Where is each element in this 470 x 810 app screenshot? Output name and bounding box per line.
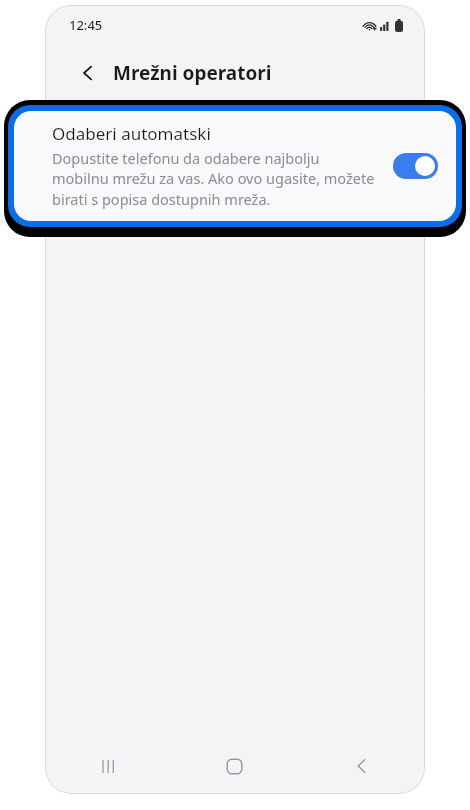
button[interactable]: Home	[171, 738, 298, 794]
button[interactable]: Recents	[45, 738, 171, 794]
button[interactable]: Back	[298, 738, 425, 794]
button[interactable]: Odaberi automatski	[14, 111, 456, 221]
staticText: Odaberi automatski	[52, 122, 211, 145]
staticText: 12:45	[69, 16, 103, 34]
staticText: Mrežni operatori	[113, 60, 272, 86]
button[interactable]: Odaberi automatski toggle, on	[393, 153, 438, 179]
staticText: Dopustite telefonu da odabere najbolju m…	[52, 148, 379, 210]
button[interactable]: Back	[71, 56, 105, 90]
